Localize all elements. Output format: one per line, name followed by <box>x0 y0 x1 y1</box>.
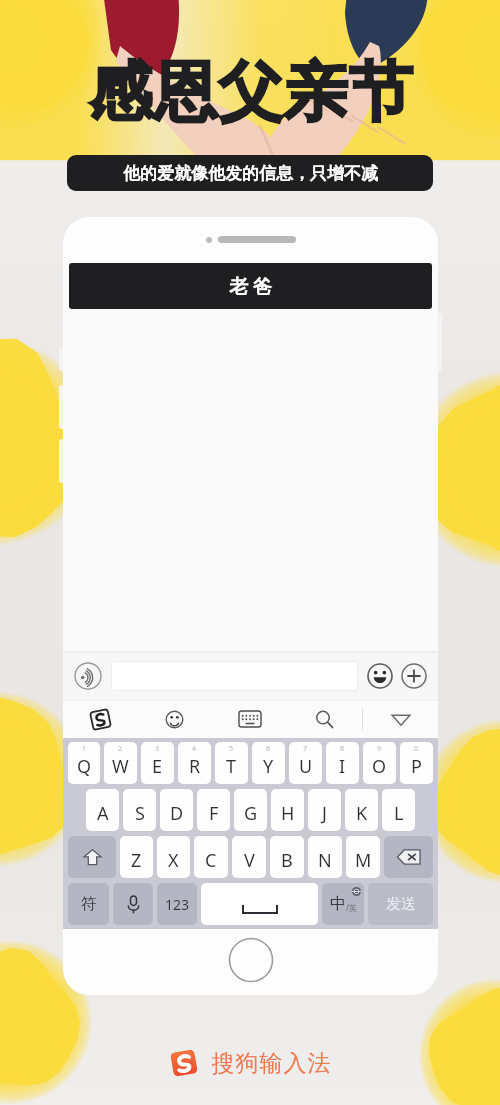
staticText: C <box>205 848 217 873</box>
button[interactable]: N <box>308 836 342 878</box>
button[interactable]: J <box>308 789 341 831</box>
staticText: V <box>244 848 255 873</box>
staticText: 老 爸 <box>229 273 272 299</box>
button[interactable]: 0 <box>400 742 433 784</box>
staticText: O <box>372 754 387 779</box>
button[interactable]: Sogou menu <box>63 700 137 738</box>
button[interactable]: V <box>232 836 266 878</box>
staticText: 5 <box>229 744 234 754</box>
button[interactable]: 发送 <box>368 883 433 925</box>
staticText: R <box>189 754 201 779</box>
staticText: S <box>135 801 145 826</box>
staticText: P <box>411 754 422 779</box>
button[interactable]: F <box>197 789 230 831</box>
button[interactable]: Hide keyboard <box>363 700 438 738</box>
staticText: K <box>356 801 368 826</box>
button[interactable]: 3 <box>141 742 174 784</box>
button[interactable]: 6 <box>252 742 285 784</box>
staticText: W <box>112 754 129 779</box>
button[interactable]: 5 <box>215 742 248 784</box>
button[interactable]: 中 <box>322 883 364 925</box>
staticText: 中 <box>330 894 346 914</box>
button[interactable]: 7 <box>289 742 322 784</box>
button[interactable]: Backspace <box>384 836 433 878</box>
button[interactable] <box>111 661 358 691</box>
button[interactable]: A <box>86 789 119 831</box>
button[interactable]: K <box>345 789 378 831</box>
button[interactable]: L <box>382 789 415 831</box>
button[interactable]: 1 <box>68 742 100 784</box>
button[interactable]: Emoji <box>366 662 394 690</box>
button[interactable]: M <box>346 836 380 878</box>
staticText: 感恩父亲节 <box>88 52 413 133</box>
button[interactable]: Search <box>287 700 362 738</box>
staticText: G <box>244 801 258 826</box>
staticText: 0 <box>414 744 419 754</box>
staticText: 3 <box>155 744 160 754</box>
staticText: I <box>339 754 346 779</box>
button[interactable]: B <box>270 836 304 878</box>
staticText: 9 <box>377 744 382 754</box>
staticText: 6 <box>266 744 271 754</box>
staticText: 8 <box>340 744 345 754</box>
button[interactable]: Space <box>201 883 318 925</box>
staticText: U <box>299 754 313 779</box>
button[interactable]: Keyboard layout <box>212 700 287 738</box>
button[interactable]: X <box>157 836 190 878</box>
staticText: 符 <box>81 894 97 914</box>
button[interactable]: S <box>123 789 156 831</box>
button[interactable]: H <box>271 789 304 831</box>
staticText: L <box>394 801 404 826</box>
staticText: D <box>170 801 184 826</box>
staticText: Z <box>131 848 142 873</box>
staticText: M <box>355 848 372 873</box>
staticText: T <box>226 754 237 779</box>
staticText: 发送 <box>386 895 416 914</box>
staticText: F <box>209 801 219 826</box>
button[interactable]: 2 <box>104 742 137 784</box>
button[interactable]: D <box>160 789 193 831</box>
button[interactable]: Home <box>228 937 274 983</box>
button[interactable]: G <box>234 789 267 831</box>
staticText: Q <box>77 754 92 779</box>
staticText: E <box>152 754 163 779</box>
staticText: 1 <box>82 744 87 754</box>
staticText: 123 <box>165 895 190 914</box>
staticText: N <box>318 848 332 873</box>
staticText: Y <box>263 754 274 779</box>
button[interactable]: Shift <box>68 836 116 878</box>
button[interactable]: 8 <box>326 742 359 784</box>
staticText: 4 <box>192 744 197 754</box>
staticText: 2 <box>118 744 123 754</box>
button[interactable]: 9 <box>363 742 396 784</box>
other: Sogou logo <box>169 1048 199 1078</box>
button[interactable]: Voice <box>113 883 153 925</box>
button[interactable]: 123 <box>157 883 197 925</box>
staticText: B <box>281 848 293 873</box>
button[interactable]: Z <box>120 836 153 878</box>
staticText: A <box>97 801 109 826</box>
staticText: 搜狗输入法 <box>211 1049 331 1078</box>
button[interactable]: More <box>400 662 428 690</box>
staticText: 7 <box>303 744 308 754</box>
button[interactable]: 4 <box>178 742 211 784</box>
button[interactable]: C <box>194 836 228 878</box>
staticText: H <box>281 801 295 826</box>
button[interactable]: Voice input <box>73 661 103 691</box>
staticText: X <box>168 848 179 873</box>
button[interactable]: Expression <box>137 700 212 738</box>
button[interactable]: 老 爸 <box>69 263 432 309</box>
button[interactable]: 符 <box>68 883 109 925</box>
